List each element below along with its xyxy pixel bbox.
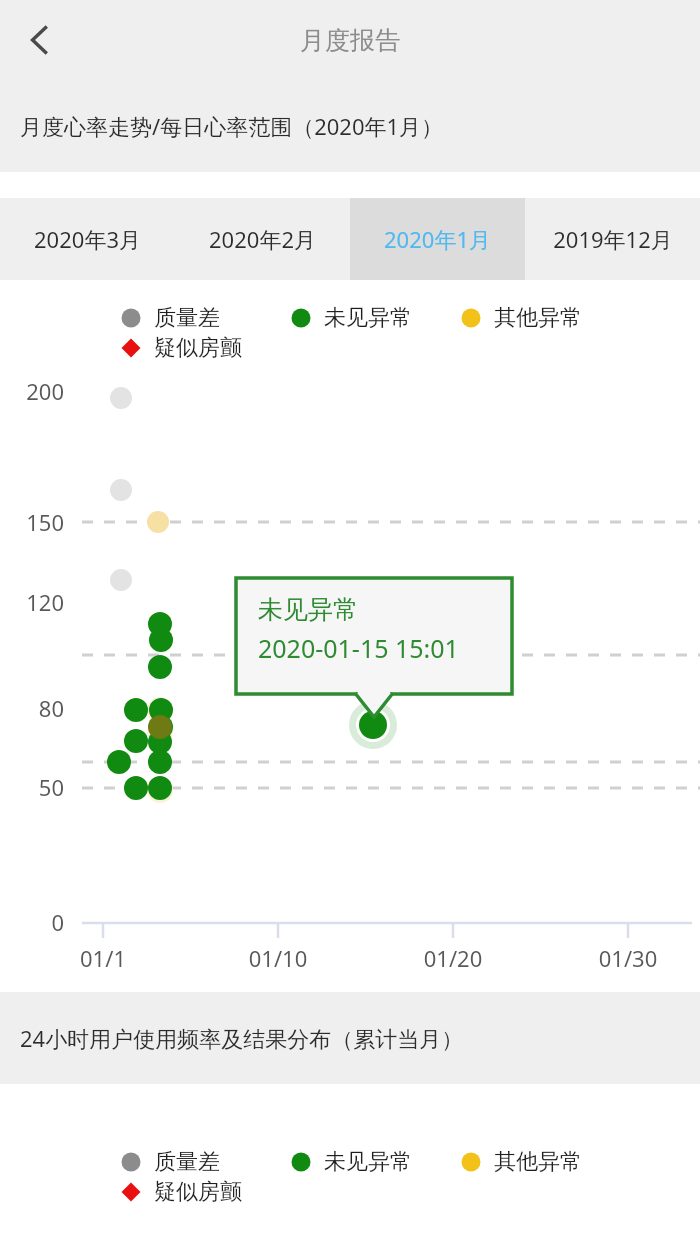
staticText: 未见异常 bbox=[258, 594, 358, 625]
staticText: 0 bbox=[0, 907, 64, 937]
button[interactable]: 2020年3月 bbox=[0, 198, 175, 280]
staticText: 2019年12月 bbox=[553, 224, 673, 254]
staticText: 2020年1月 bbox=[384, 224, 491, 254]
staticText: 24小时用户使用频率及结果分布（累计当月） bbox=[20, 1023, 464, 1053]
staticText: 未见异常 bbox=[324, 304, 412, 332]
staticText: 疑似房颤 bbox=[154, 1178, 242, 1206]
staticText: 150 bbox=[0, 507, 64, 537]
staticText: 疑似房颤 bbox=[154, 334, 242, 362]
staticText: 其他异常 bbox=[494, 1148, 582, 1176]
button[interactable]: 2020年2月 bbox=[175, 198, 350, 280]
staticText: 01/1 bbox=[58, 943, 148, 973]
button[interactable]: 2019年12月 bbox=[525, 198, 700, 280]
staticText: 01/10 bbox=[233, 943, 323, 973]
staticText: 月度心率走势/每日心率范围（2020年1月） bbox=[20, 111, 444, 141]
staticText: 200 bbox=[0, 376, 64, 406]
staticText: 01/20 bbox=[408, 943, 498, 973]
staticText: 80 bbox=[0, 693, 64, 723]
staticText: 其他异常 bbox=[494, 304, 582, 332]
staticText: 质量差 bbox=[154, 1148, 220, 1176]
staticText: 月度报告 bbox=[300, 25, 400, 56]
button[interactable]: 2020年1月 bbox=[350, 198, 525, 280]
staticText: 2020年3月 bbox=[34, 224, 141, 254]
staticText: 2020年2月 bbox=[209, 224, 316, 254]
button[interactable]: Back bbox=[6, 6, 74, 74]
staticText: 2020-01-15 15:01 bbox=[258, 631, 459, 665]
staticText: 质量差 bbox=[154, 304, 220, 332]
staticText: 50 bbox=[0, 772, 64, 802]
staticText: 未见异常 bbox=[324, 1148, 412, 1176]
staticText: 120 bbox=[0, 587, 64, 617]
staticText: 01/30 bbox=[583, 943, 673, 973]
